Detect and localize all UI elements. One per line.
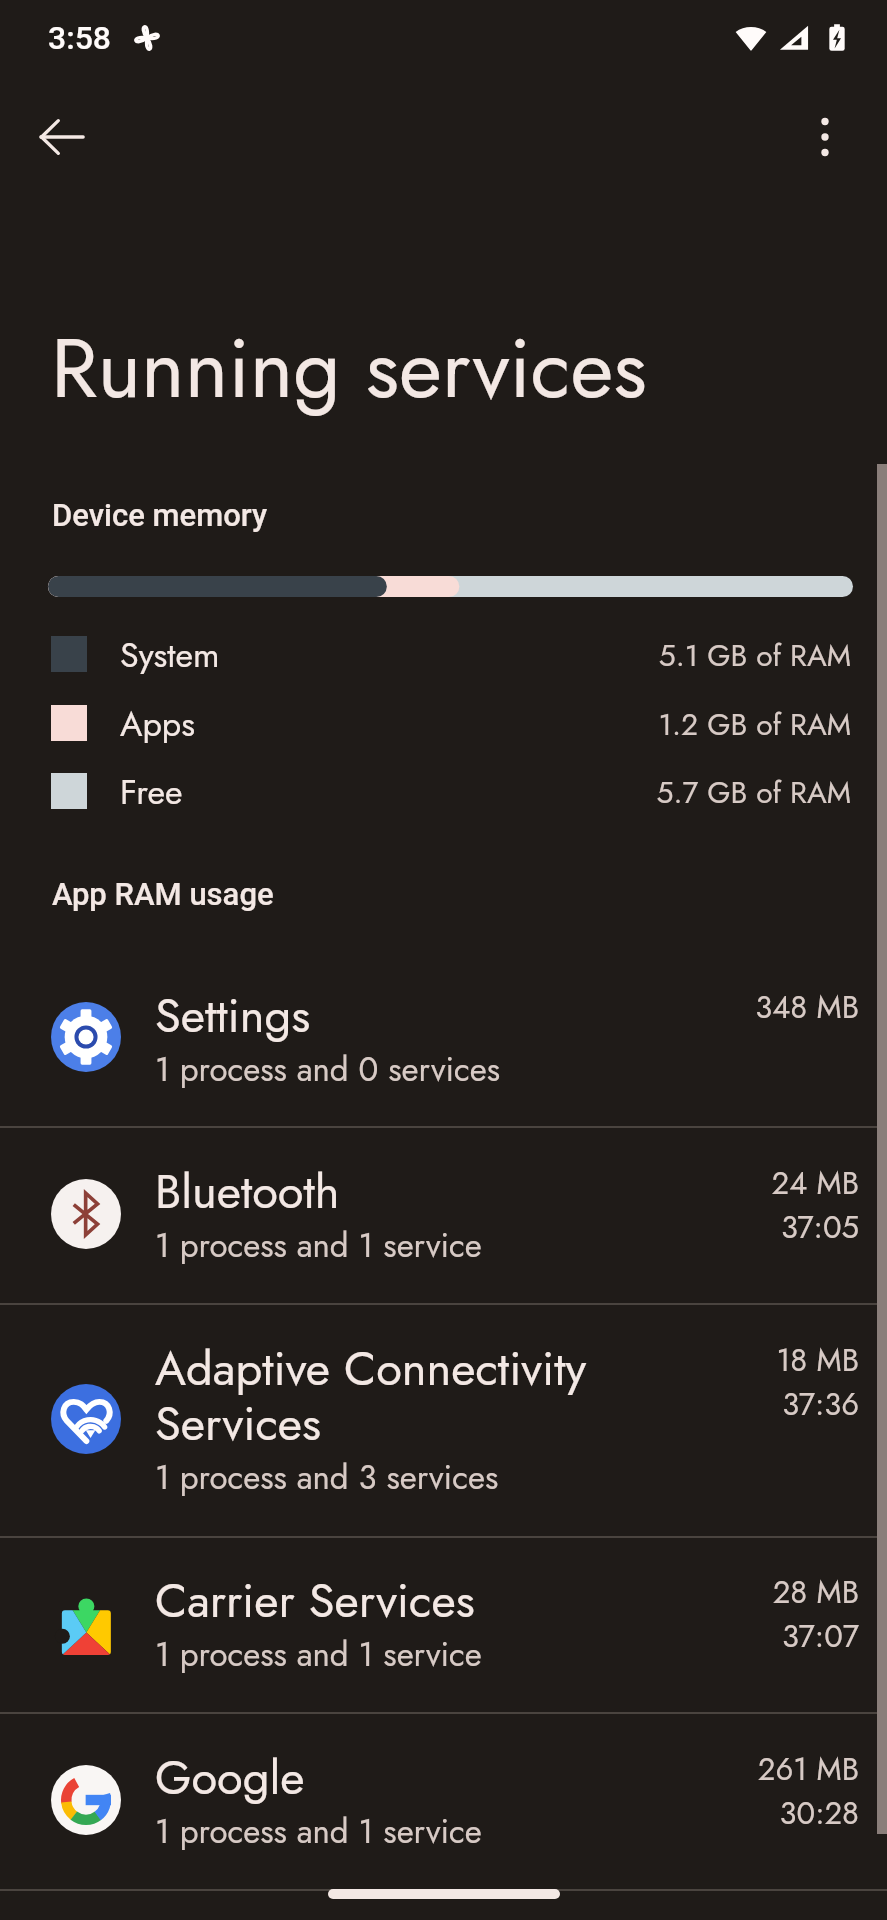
staticText: 1 process and 0 services [155,1046,501,1094]
staticText: 5.7 GB of RAM [450,771,851,814]
button[interactable]: Apps [0,705,887,774]
button[interactable]: Free [0,773,887,842]
staticText: 261 MB [559,1747,859,1792]
staticText: 1 process and 1 service [155,1808,482,1856]
staticText: 37:36 [559,1382,859,1427]
button[interactable]: Adaptive Connectivity [0,1304,887,1536]
staticText: Services [155,1390,322,1458]
staticText: 348 MB [559,985,859,1030]
staticText: 1 process and 1 service [155,1222,482,1270]
staticText: Device memory [52,497,268,533]
staticText: 5.1 GB of RAM [450,634,851,677]
button[interactable]: System [0,636,887,705]
button[interactable]: Bluetooth [0,1127,887,1303]
staticText: 30:28 [559,1791,859,1836]
staticText: 1 process and 3 services [155,1454,499,1502]
staticText: Carrier Services [155,1567,475,1635]
staticText: App RAM usage [52,876,274,912]
staticText: 1 process and 1 service [155,1631,482,1679]
button[interactable]: Google [0,1713,887,1889]
staticText: 37:07 [559,1614,859,1659]
staticText: 18 MB [559,1338,859,1383]
staticText: Bluetooth [155,1158,340,1226]
staticText: 28 MB [559,1570,859,1615]
staticText: System [120,631,220,680]
button[interactable]: Carrier Services [0,1537,887,1712]
staticText: 3:58 [48,19,112,57]
staticText: Adaptive Connectivity [155,1335,587,1403]
staticText: Running services [51,308,647,428]
button[interactable]: More options [787,99,863,175]
staticText: Settings [155,982,311,1050]
button[interactable]: Settings [0,951,887,1126]
staticText: 1.2 GB of RAM [450,703,851,746]
button[interactable]: Back [24,99,100,175]
staticText: 37:05 [559,1205,859,1250]
staticText: Google [155,1744,305,1812]
staticText: 24 MB [559,1161,859,1206]
staticText: Free [120,768,183,817]
staticText: Apps [120,700,195,749]
